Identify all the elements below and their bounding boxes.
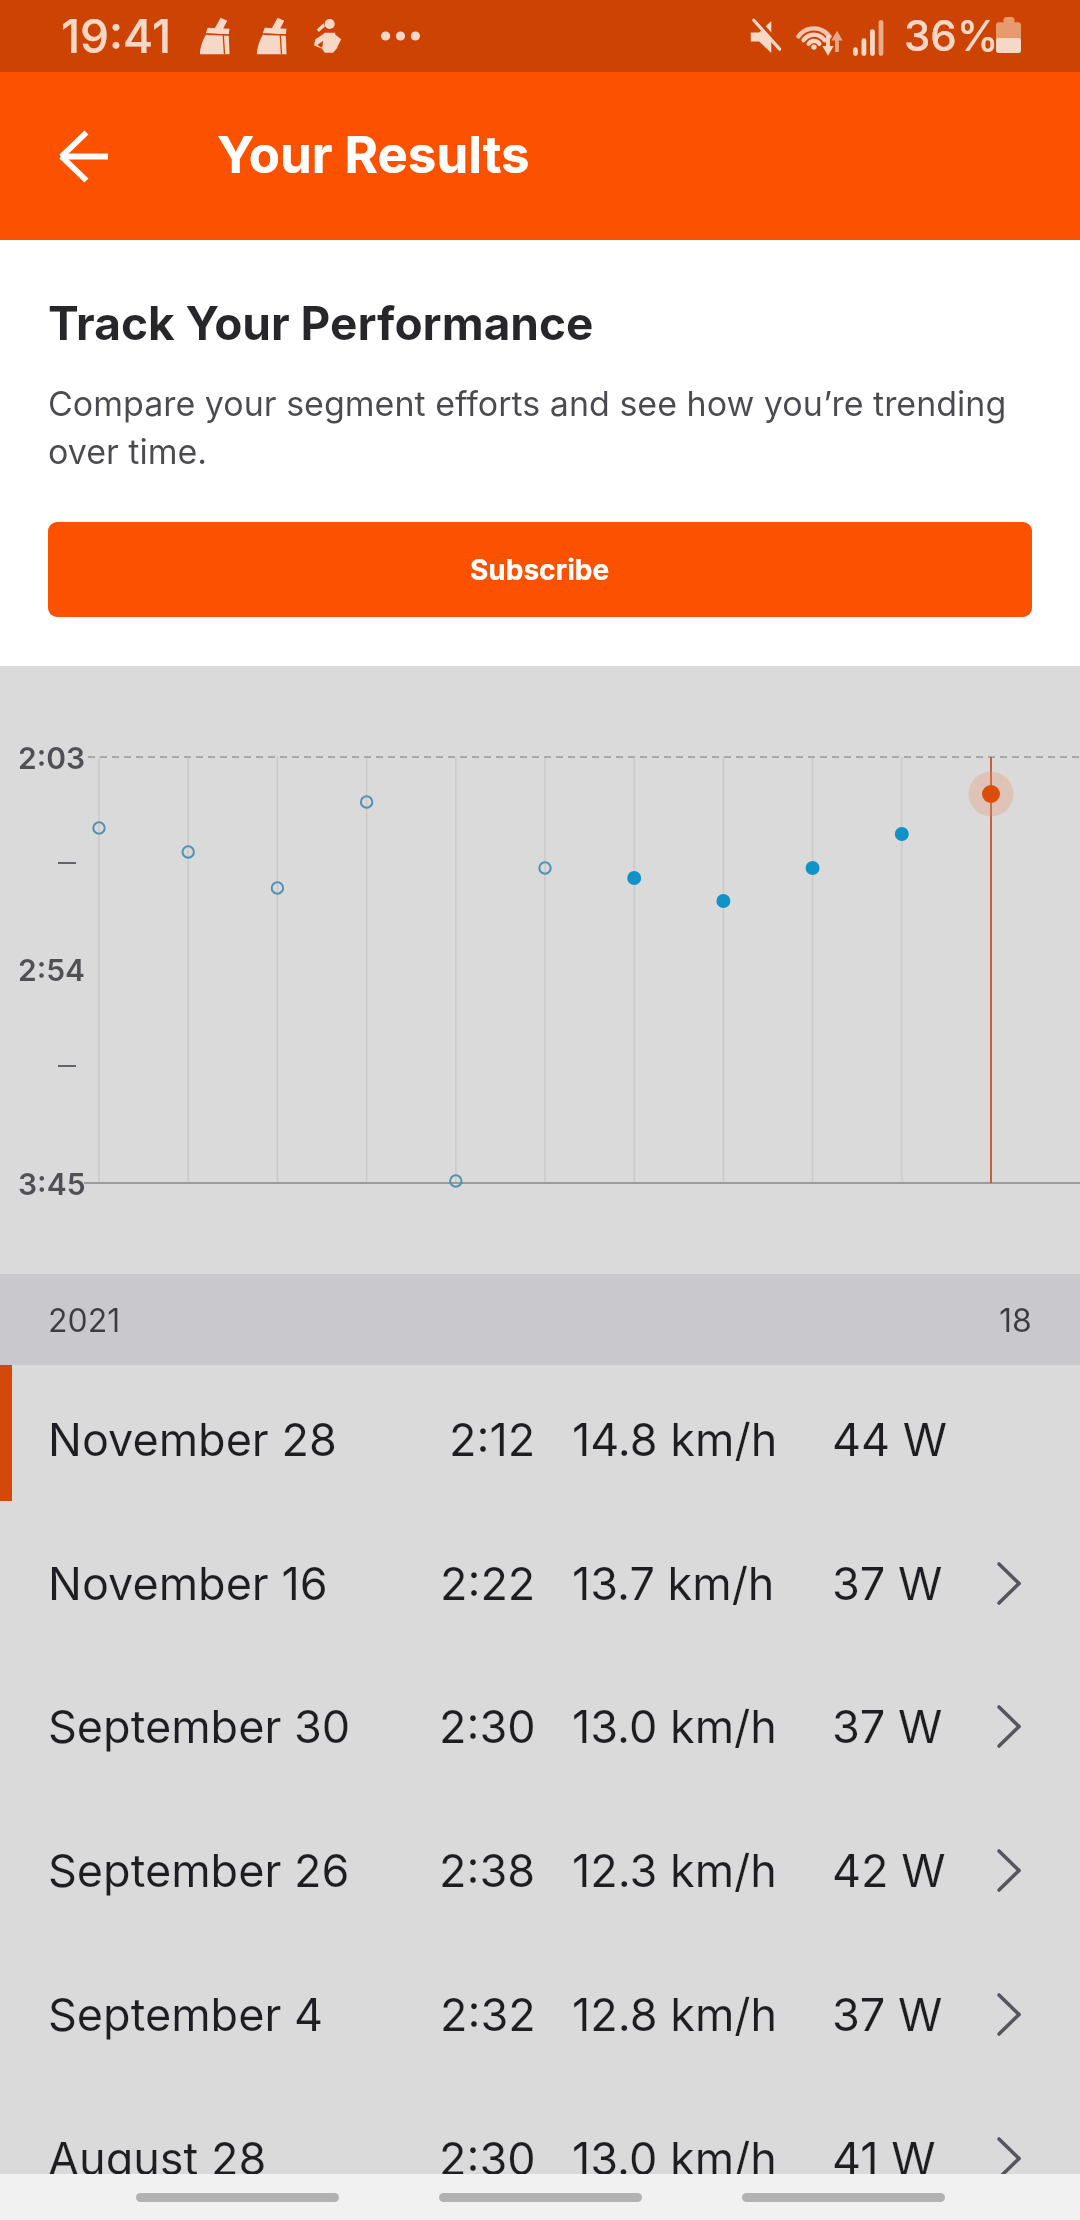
staticText: 14.8 km/h <box>572 1412 778 1466</box>
button[interactable]: Subscribe <box>48 522 1032 617</box>
staticText: 2021 <box>48 1301 121 1340</box>
staticText: 2:54 <box>18 952 86 988</box>
staticText: 13.0 km/h <box>572 1699 777 1753</box>
staticText: Compare your segment efforts and see how… <box>48 383 1033 473</box>
staticText: 12.8 km/h <box>572 1987 778 2041</box>
staticText: 37 W <box>832 1699 943 1753</box>
button[interactable]: Back <box>35 108 131 204</box>
staticText: 18 <box>999 1301 1032 1340</box>
staticText: 2:12 <box>449 1412 536 1466</box>
staticText: Your Results <box>217 124 530 186</box>
staticText: 42 W <box>832 1843 946 1897</box>
staticText: September 30 <box>48 1699 351 1753</box>
button[interactable]: November 16 <box>0 1509 1080 1653</box>
button[interactable]: September 30 <box>0 1652 1080 1796</box>
staticText: 41 W <box>832 2131 936 2185</box>
staticText: 37 W <box>832 1987 943 2041</box>
staticText: 2:38 <box>439 1843 536 1897</box>
button[interactable]: Recents <box>136 2193 339 2202</box>
staticText: Subscribe <box>470 553 610 587</box>
staticText: 36% <box>904 10 999 61</box>
staticText: November 28 <box>48 1412 337 1466</box>
staticText: November 16 <box>48 1556 328 1610</box>
button[interactable]: November 28 <box>0 1365 1080 1509</box>
staticText: September 26 <box>48 1843 350 1897</box>
staticText: 12.3 km/h <box>572 1843 777 1897</box>
staticText: 37 W <box>832 1556 943 1610</box>
button[interactable]: Back <box>742 2193 945 2202</box>
button[interactable]: Home <box>439 2193 642 2202</box>
staticText: 2:30 <box>439 1699 536 1753</box>
staticText: August 28 <box>48 2131 267 2185</box>
staticText: 2:30 <box>439 2131 536 2185</box>
staticText: 3:45 <box>18 1166 86 1202</box>
staticText: Track Your Performance <box>48 295 594 351</box>
staticText: 19:41 <box>61 8 172 64</box>
button[interactable]: September 4 <box>0 1940 1080 2084</box>
staticText: 2:32 <box>440 1987 536 2041</box>
staticText: 2:22 <box>440 1556 536 1610</box>
staticText: 13.0 km/h <box>572 2131 777 2185</box>
button[interactable]: August 28 <box>0 2084 1080 2220</box>
button[interactable]: September 26 <box>0 1796 1080 1940</box>
staticText: 44 W <box>832 1412 948 1466</box>
staticText: 13.7 km/h <box>572 1556 775 1610</box>
staticText: September 4 <box>48 1987 324 2041</box>
staticText: 2:03 <box>18 740 86 776</box>
